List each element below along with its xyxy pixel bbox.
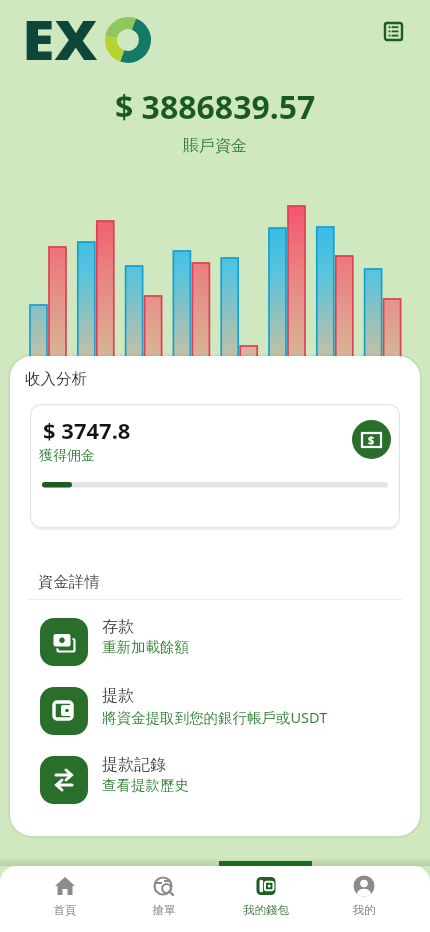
staticText: $ 3886839.57 [115, 85, 316, 129]
staticText: 收入分析 [25, 369, 87, 389]
staticText: $ 3747.8 [43, 415, 131, 445]
staticText: 搶單 [124, 903, 204, 917]
staticText: 我的錢包 [226, 903, 306, 917]
staticText: 賬戶資金 [183, 136, 247, 156]
staticText: 將資金提取到您的銀行帳戶或USDT [102, 707, 328, 727]
staticText: 首頁 [25, 903, 105, 917]
staticText: EX [22, 2, 98, 76]
staticText: 查看提款歷史 [102, 776, 189, 794]
staticText: $ [368, 432, 375, 447]
staticText: 提款記錄 [102, 755, 166, 775]
staticText: 存款 [102, 617, 134, 637]
staticText: 我的 [324, 903, 404, 917]
staticText: 提款 [102, 686, 134, 706]
staticText: 重新加載餘額 [102, 638, 189, 656]
staticText: 資金詳情 [38, 572, 100, 592]
staticText: 獲得佣金 [39, 447, 95, 465]
